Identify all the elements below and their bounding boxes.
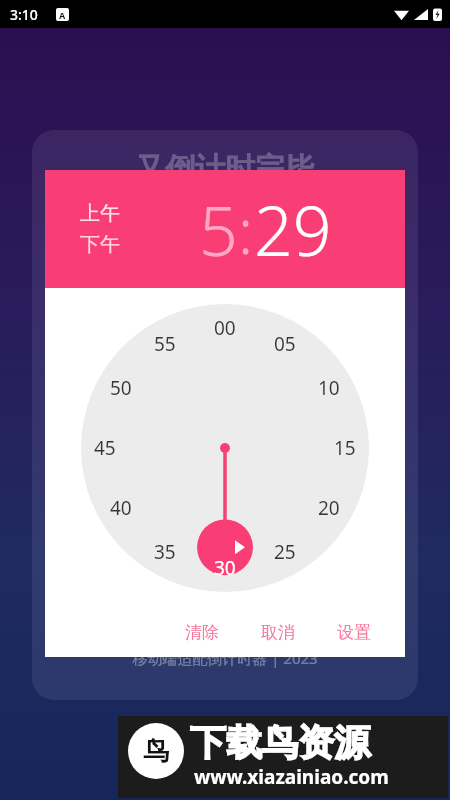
- staticText: 10: [318, 375, 340, 401]
- staticText: 00: [214, 315, 236, 341]
- staticText: 25: [274, 539, 296, 565]
- button[interactable]: Minute dial: [81, 304, 369, 592]
- staticText: 45: [94, 435, 116, 461]
- staticText: 鸟: [143, 735, 169, 768]
- staticText: 清除: [185, 622, 219, 643]
- staticText: 设置: [337, 622, 371, 643]
- button[interactable]: 29: [254, 183, 332, 276]
- staticText: www.xiazainiao.com: [194, 764, 389, 790]
- staticText: 3:10: [10, 5, 38, 24]
- staticText: 15: [334, 435, 356, 461]
- staticText: 移动端适配倒计时器 | 2023: [32, 648, 418, 668]
- staticText: :: [238, 188, 254, 272]
- button[interactable]: 取消: [253, 616, 303, 649]
- staticText: 35: [154, 539, 176, 565]
- staticText: 又倒计时完毕: [32, 150, 418, 188]
- staticText: 下载鸟资源: [190, 720, 370, 765]
- staticText: 50: [110, 375, 132, 401]
- staticText: 29: [254, 183, 332, 276]
- staticText: A: [59, 9, 66, 21]
- button[interactable]: 清除: [177, 616, 227, 649]
- staticText: 5: [199, 183, 238, 276]
- staticText: 取消: [261, 622, 295, 643]
- staticText: 20: [318, 495, 340, 521]
- staticText: 上午: [80, 201, 120, 226]
- staticText: 55: [154, 331, 176, 357]
- staticText: 05: [274, 331, 296, 357]
- button[interactable]: 上午: [80, 201, 120, 226]
- staticText: 30: [214, 555, 236, 581]
- button[interactable]: 5: [199, 183, 238, 276]
- staticText: 40: [110, 495, 132, 521]
- button[interactable]: 设置: [329, 616, 379, 649]
- staticText: 下午: [80, 232, 120, 257]
- button[interactable]: 下午: [80, 232, 120, 257]
